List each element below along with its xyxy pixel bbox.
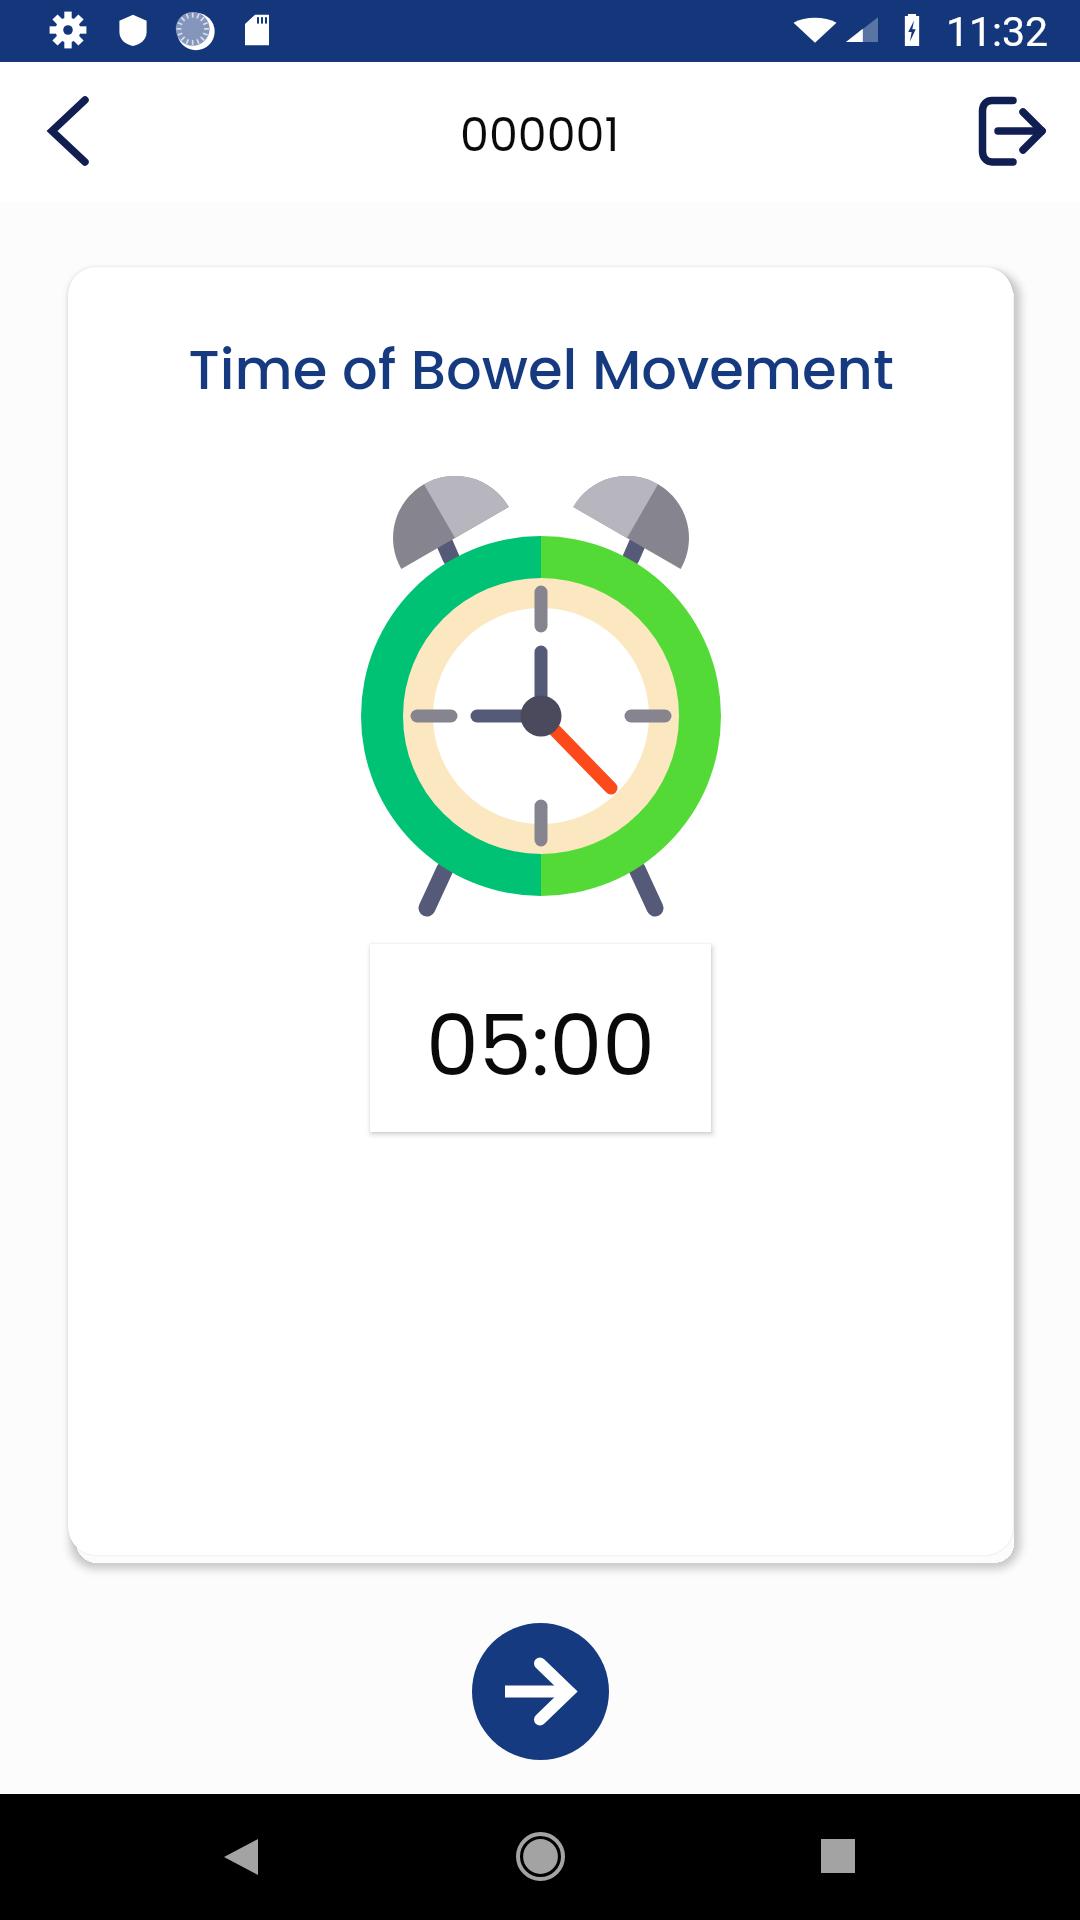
button[interactable]: Back <box>6 85 98 177</box>
button[interactable]: Recents <box>790 1808 886 1904</box>
button[interactable]: Home <box>492 1808 588 1904</box>
button[interactable]: Logout <box>961 78 1063 180</box>
button[interactable]: Next <box>472 1623 609 1760</box>
staticText: 000001 <box>460 103 620 167</box>
staticText: 11:32 <box>946 8 1049 56</box>
staticText: 05:00 <box>426 987 655 1105</box>
button[interactable]: Back <box>193 1809 289 1905</box>
staticText: Time of Bowel Movement <box>188 330 894 408</box>
